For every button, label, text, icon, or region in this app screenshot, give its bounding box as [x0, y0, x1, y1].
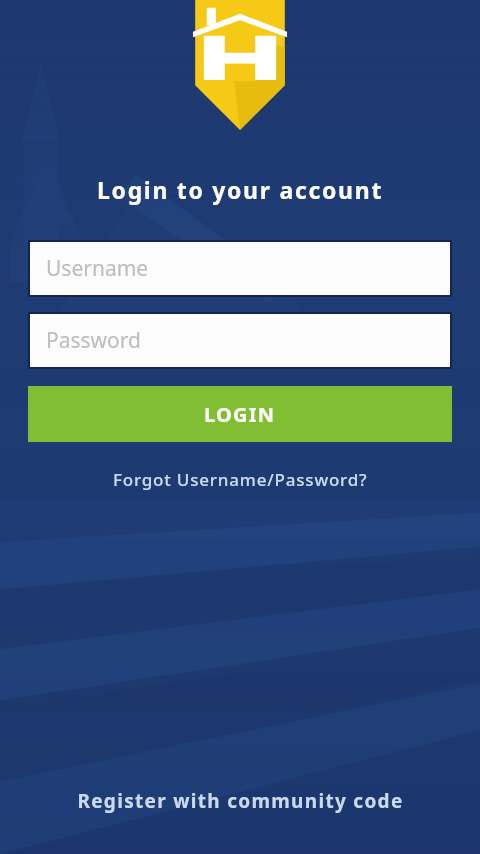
staticText: Username — [46, 254, 149, 283]
button[interactable]: Forgot Username/Password? — [99, 462, 382, 497]
button[interactable]: Username — [30, 242, 450, 295]
staticText: Login to your account — [97, 174, 384, 205]
button[interactable]: Register with community code — [61, 782, 420, 820]
button[interactable]: Password — [30, 314, 450, 367]
staticText: LOGIN — [204, 401, 276, 428]
button[interactable]: LOGIN — [28, 386, 452, 442]
staticText: Forgot Username/Password? — [113, 468, 368, 491]
staticText: Register with community code — [77, 788, 404, 814]
staticText: Password — [46, 326, 141, 355]
